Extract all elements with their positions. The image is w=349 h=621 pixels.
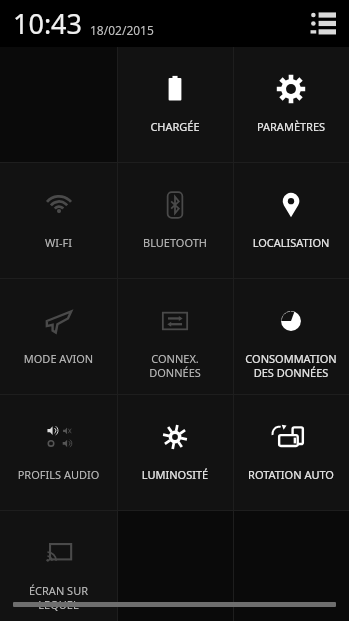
button[interactable]: WI-FI	[0, 163, 117, 278]
staticText: CHARGÉE	[119, 119, 231, 134]
staticText: MODE AVION	[2, 351, 115, 366]
button[interactable]: CHARGÉE	[117, 47, 233, 162]
staticText: BLUETOOTH	[119, 235, 231, 250]
staticText: CONSOMMATION DES DONNÉES	[235, 351, 347, 380]
staticText: ÉCRAN SUR LEQUEL	[2, 583, 115, 612]
button[interactable]: ÉCRAN SUR LEQUEL	[0, 511, 117, 621]
button[interactable]: ROTATION AUTO	[233, 395, 349, 510]
staticText: LUMINOSITÉ	[119, 467, 231, 482]
button[interactable]: CONSOMMATION DES DONNÉES	[233, 279, 349, 394]
button[interactable]: BLUETOOTH	[117, 163, 233, 278]
staticText: PROFILS AUDIO	[2, 467, 115, 482]
button[interactable]: CONNEX. DONNÉES	[117, 279, 233, 394]
staticText: WI-FI	[2, 235, 115, 250]
button[interactable]: PROFILS AUDIO	[0, 395, 117, 510]
button[interactable]: MODE AVION	[0, 279, 117, 394]
button[interactable]: Quick settings list	[306, 7, 340, 41]
staticText: ROTATION AUTO	[235, 467, 347, 482]
staticText: 10:43	[13, 5, 83, 42]
staticText: CONNEX. DONNÉES	[119, 351, 231, 380]
staticText: 18/02/2015	[90, 22, 154, 38]
button[interactable]: LUMINOSITÉ	[117, 395, 233, 510]
button[interactable]: PARAMÈTRES	[233, 47, 349, 162]
button[interactable]: LOCALISATION	[233, 163, 349, 278]
staticText: LOCALISATION	[235, 235, 347, 250]
staticText: PARAMÈTRES	[235, 119, 347, 134]
